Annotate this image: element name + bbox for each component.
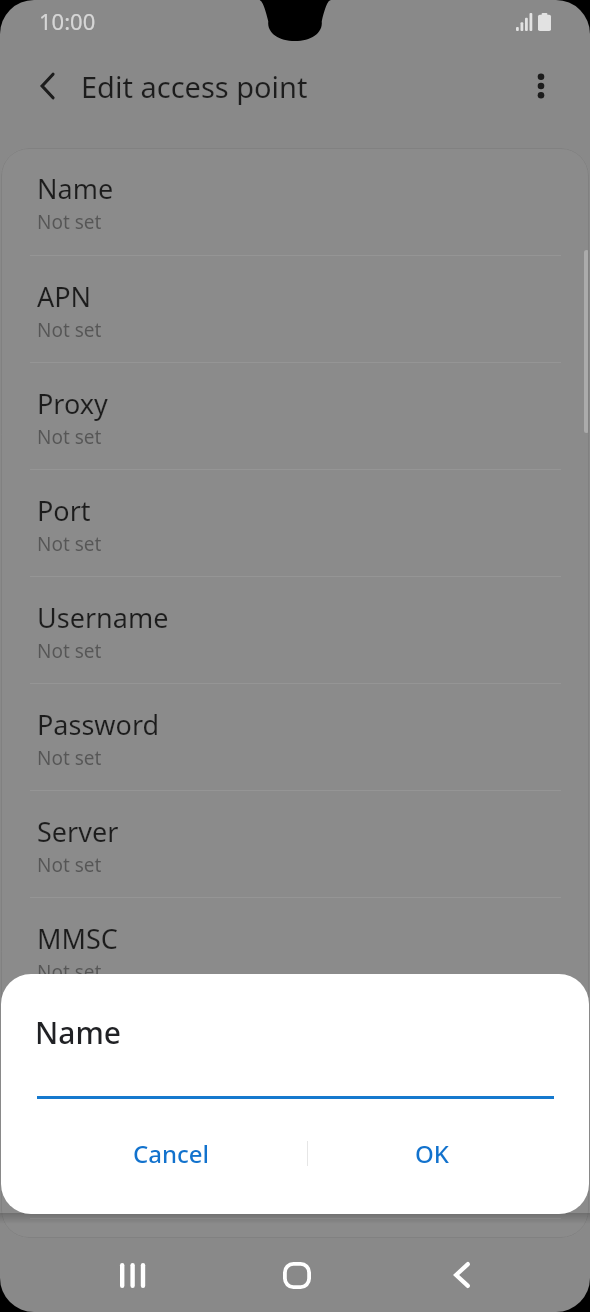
button[interactable]: More options [515, 60, 567, 112]
button[interactable]: MMS proxy [1, 1005, 589, 1111]
button[interactable]: Cancel [41, 1124, 301, 1182]
staticText: Not set [37, 531, 102, 557]
staticText: MMS proxy [37, 1027, 179, 1064]
staticText: MMS port [37, 1134, 162, 1171]
button[interactable]: Password [1, 684, 589, 790]
staticText: Not set [37, 209, 102, 235]
button[interactable]: MMS port [1, 1112, 589, 1218]
staticText: Not set [37, 959, 102, 985]
staticText: APN [37, 278, 92, 315]
button[interactable]: MCC [1, 1219, 589, 1238]
staticText: Not set [37, 638, 102, 664]
button[interactable]: APN [1, 256, 589, 362]
button[interactable]: Server [1, 791, 589, 897]
staticText: Not set [37, 317, 102, 343]
button[interactable]: Recent apps [99, 1242, 165, 1308]
staticText: Username [37, 599, 169, 636]
staticText: Not set [37, 852, 102, 878]
staticText: OK [415, 1137, 449, 1170]
staticText: Name [35, 1012, 122, 1053]
staticText: Server [37, 813, 119, 850]
button[interactable]: Navigate up [22, 60, 74, 112]
staticText: 10:00 [39, 6, 96, 36]
button[interactable]: Name [1, 148, 589, 255]
staticText: MMSC [37, 920, 118, 957]
button[interactable]: MMSC [1, 898, 589, 1004]
button[interactable]: Home [264, 1242, 330, 1308]
button[interactable]: Port [1, 470, 589, 576]
staticText: Port [37, 492, 91, 529]
staticText: Name [37, 170, 114, 207]
button[interactable]: Back [429, 1242, 495, 1308]
staticText: Edit access point [81, 67, 308, 106]
button[interactable]: OK [301, 1124, 562, 1182]
staticText: Cancel [133, 1137, 210, 1170]
staticText: Password [37, 706, 160, 743]
button[interactable]: Username [1, 577, 589, 683]
staticText: Not set [37, 424, 102, 450]
button[interactable]: Proxy [1, 363, 589, 469]
staticText: Proxy [37, 385, 108, 422]
staticText: Not set [37, 745, 102, 771]
